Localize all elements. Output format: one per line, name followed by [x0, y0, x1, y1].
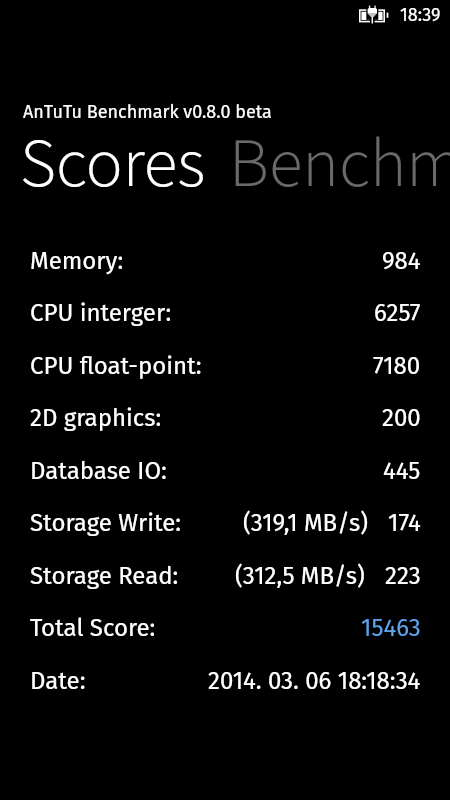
button[interactable]: Total Score:: [0, 614, 450, 666]
staticText: Date:: [30, 667, 86, 696]
staticText: 445: [383, 457, 421, 486]
staticText: CPU float-point:: [30, 352, 202, 381]
button[interactable]: Storage Write:: [0, 509, 450, 561]
staticText: Database IO:: [30, 457, 167, 486]
staticText: 984: [382, 247, 421, 276]
staticText: 223: [385, 562, 421, 591]
staticText: 7180: [373, 352, 421, 381]
button[interactable]: 2D graphics:: [0, 404, 450, 456]
staticText: (319,1 MB/s): [243, 509, 368, 538]
staticText: 174: [388, 509, 421, 538]
button[interactable]: Scores: [20, 115, 206, 213]
staticText: 200: [382, 404, 421, 433]
staticText: 15463: [361, 614, 421, 643]
staticText: Storage Write:: [30, 509, 182, 538]
button[interactable]: Memory:: [0, 247, 450, 299]
staticText: Memory:: [30, 247, 124, 276]
staticText: Storage Read:: [30, 562, 179, 591]
staticText: CPU interger:: [30, 299, 172, 328]
staticText: 2D graphics:: [30, 404, 162, 433]
other: Battery charging: [355, 3, 391, 27]
button[interactable]: Storage Read:: [0, 562, 450, 614]
button[interactable]: Database IO:: [0, 457, 450, 509]
button[interactable]: CPU float-point:: [0, 352, 450, 404]
button[interactable]: Date:: [0, 667, 450, 719]
staticText: 18:39: [400, 4, 441, 26]
staticText: Total Score:: [30, 614, 156, 643]
staticText: 6257: [374, 299, 421, 328]
button[interactable]: CPU interger:: [0, 299, 450, 351]
staticText: AnTuTu Benchmark v0.8.0 beta: [23, 101, 272, 123]
button[interactable]: Benchmark: [229, 115, 450, 213]
staticText: (312,5 MB/s): [235, 562, 365, 591]
staticText: 2014. 03. 06 18:18:34: [208, 667, 421, 696]
